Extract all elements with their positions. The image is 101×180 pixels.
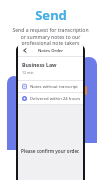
staticText: Send <box>35 6 67 24</box>
button[interactable]: Delivered within 24 hours <box>18 93 83 104</box>
staticText: Notes without transcript <box>30 84 78 90</box>
button[interactable]: Notes without transcript <box>18 81 83 92</box>
staticText: 12 min <box>22 70 34 75</box>
button[interactable]: Back <box>20 46 29 55</box>
staticText: Please confirm your order. <box>21 148 80 154</box>
staticText: Send a request for transcription or summ… <box>6 27 95 47</box>
staticText: Business Law <box>22 61 57 68</box>
staticText: Notes Order <box>38 48 64 54</box>
staticText: Delivered within 24 hours <box>30 96 81 102</box>
